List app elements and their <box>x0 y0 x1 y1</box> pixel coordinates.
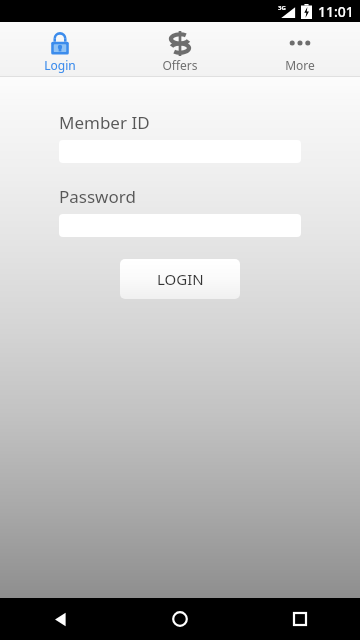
button[interactable]: Login <box>0 25 120 73</box>
staticText: Offers <box>162 57 198 73</box>
staticText: Password <box>59 185 136 208</box>
staticText: LOGIN <box>157 269 204 289</box>
button[interactable]: Home <box>120 598 240 640</box>
staticText: Member ID <box>59 111 150 134</box>
button[interactable]: Back <box>0 598 120 640</box>
button[interactable]: Recent apps <box>240 598 360 640</box>
button[interactable]: Offers <box>120 25 240 73</box>
staticText: 11:01 <box>318 2 354 21</box>
staticText: More <box>285 57 315 73</box>
staticText: Login <box>44 57 76 73</box>
staticText: 3G <box>278 4 286 12</box>
button[interactable]: More <box>240 25 360 73</box>
button[interactable]: LOGIN <box>120 259 240 299</box>
